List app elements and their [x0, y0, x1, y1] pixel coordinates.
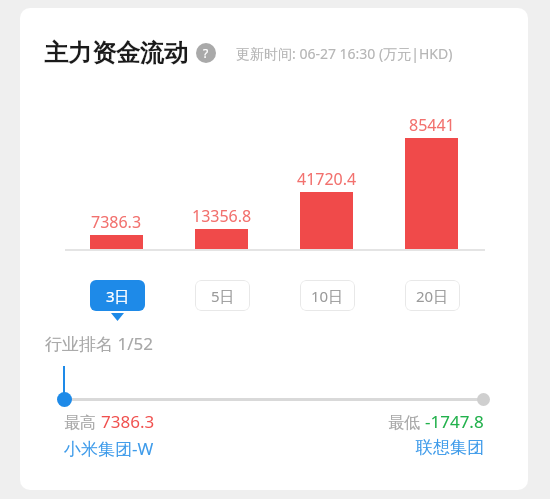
staticText: 41720.4	[297, 168, 357, 190]
button[interactable]: 最低	[356, 410, 484, 458]
button[interactable]: 20日	[405, 280, 460, 311]
staticText: 3日	[106, 286, 130, 306]
staticText: 最低	[388, 411, 425, 433]
staticText: 85441	[409, 114, 455, 136]
staticText: 主力资金流动	[44, 38, 188, 68]
staticText: ?	[203, 45, 209, 61]
staticText: 13356.8	[192, 205, 252, 227]
button[interactable]: 最高	[64, 410, 155, 460]
staticText: 联想集团	[416, 437, 484, 458]
staticText: 7386.3	[101, 410, 155, 433]
button[interactable]: 5日	[195, 280, 250, 311]
staticText: 20日	[416, 286, 449, 306]
staticText: 更新时间: 06-27 16:30 (万元|HKD)	[236, 44, 453, 63]
button[interactable]: 10日	[300, 280, 355, 311]
staticText: 5日	[211, 286, 235, 306]
button[interactable]: 3日	[90, 280, 145, 311]
button[interactable]: Help	[196, 43, 216, 63]
staticText: 行业排名 1/52	[45, 332, 153, 355]
staticText: -1747.8	[425, 410, 484, 433]
staticText: 10日	[311, 286, 344, 306]
staticText: 最高	[64, 411, 101, 433]
staticText: 7386.3	[91, 211, 142, 233]
staticText: 小米集团-W	[64, 437, 154, 460]
